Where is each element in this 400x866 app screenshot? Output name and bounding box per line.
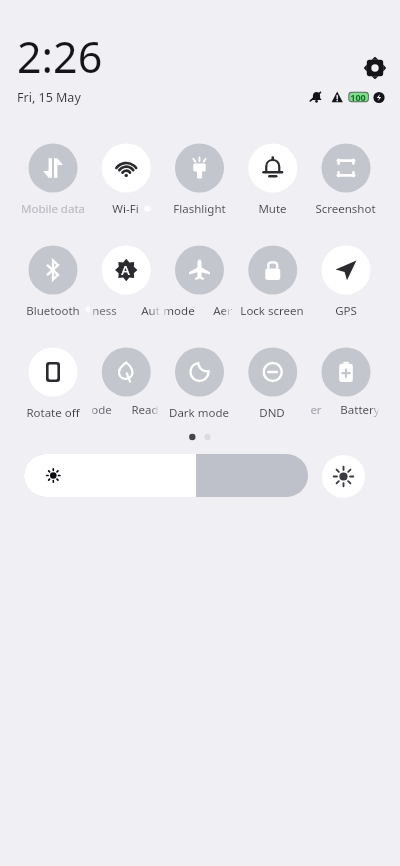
staticText: Mute xyxy=(258,201,287,217)
button[interactable]: Settings xyxy=(361,54,389,82)
staticText: Screenshot xyxy=(315,201,376,217)
button[interactable]: Rotate off xyxy=(17,345,89,417)
staticText: Mobile data xyxy=(21,201,85,217)
button[interactable]: Wi-Fi xyxy=(90,141,162,213)
button[interactable]: Mute xyxy=(237,141,309,213)
button[interactable]: Auto brightness xyxy=(322,455,365,498)
staticText: 2:26 xyxy=(17,27,103,86)
button[interactable]: Screenshot xyxy=(310,141,382,213)
staticText: A xyxy=(121,261,130,279)
staticText: Fri, 15 May xyxy=(17,89,81,106)
staticText: Read xyxy=(131,402,159,418)
staticText: DND xyxy=(259,405,285,421)
staticText: Lock screen xyxy=(240,303,304,319)
staticText: Aut xyxy=(141,303,160,319)
staticText: Flashlight xyxy=(173,201,226,217)
button[interactable]: Brightness xyxy=(24,454,308,497)
button[interactable]: GPS xyxy=(310,243,382,315)
staticText: ode xyxy=(91,402,112,418)
staticText: er xyxy=(310,402,322,418)
staticText: Bluetooth xyxy=(26,303,80,319)
button[interactable]: Bluetooth xyxy=(17,243,89,315)
staticText: Battery xyxy=(340,402,380,418)
staticText: GPS xyxy=(335,303,357,319)
button[interactable]: Reading mode xyxy=(90,345,162,417)
button[interactable]: Aeroplane mode xyxy=(164,243,236,315)
button[interactable]: Lock screen xyxy=(237,243,309,315)
button[interactable]: Dark mode xyxy=(164,345,236,417)
button[interactable]: Flashlight xyxy=(164,141,236,213)
staticText: mode xyxy=(163,303,195,319)
staticText: Dark mode xyxy=(169,405,229,421)
button[interactable]: Mobile data xyxy=(17,141,89,213)
button[interactable]: Do not disturb xyxy=(237,345,309,417)
button[interactable]: Battery xyxy=(310,345,382,417)
staticText: Rotate off xyxy=(26,405,80,421)
staticText: Wi-Fi xyxy=(112,201,139,217)
staticText: 100 xyxy=(350,91,366,103)
button[interactable]: Brightness xyxy=(90,243,162,315)
staticText: ness xyxy=(92,303,117,319)
staticText: Aer xyxy=(213,303,232,319)
